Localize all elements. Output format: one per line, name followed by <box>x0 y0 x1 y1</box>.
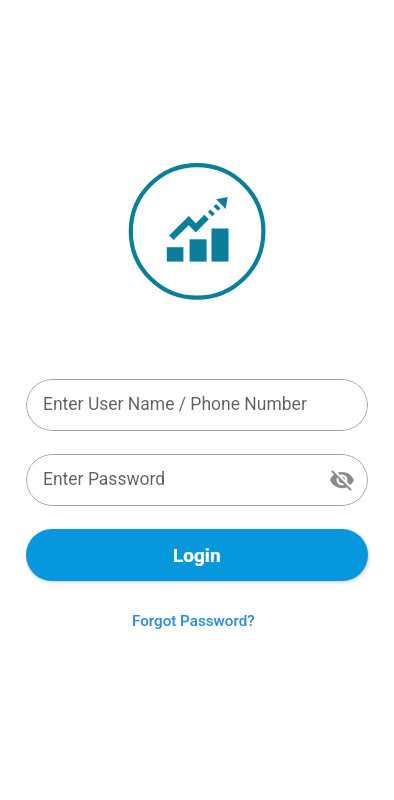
button[interactable]: Show password <box>324 462 360 498</box>
staticText: Enter Password <box>43 469 166 490</box>
button[interactable]: Enter Password <box>26 454 368 506</box>
button[interactable]: Forgot Password? <box>124 608 263 634</box>
staticText: Forgot Password? <box>132 612 255 630</box>
staticText: Enter User Name / Phone Number <box>43 394 307 415</box>
button[interactable]: Login <box>26 529 368 581</box>
staticText: Login <box>173 544 221 566</box>
button[interactable]: Enter User Name / Phone Number <box>26 379 368 431</box>
